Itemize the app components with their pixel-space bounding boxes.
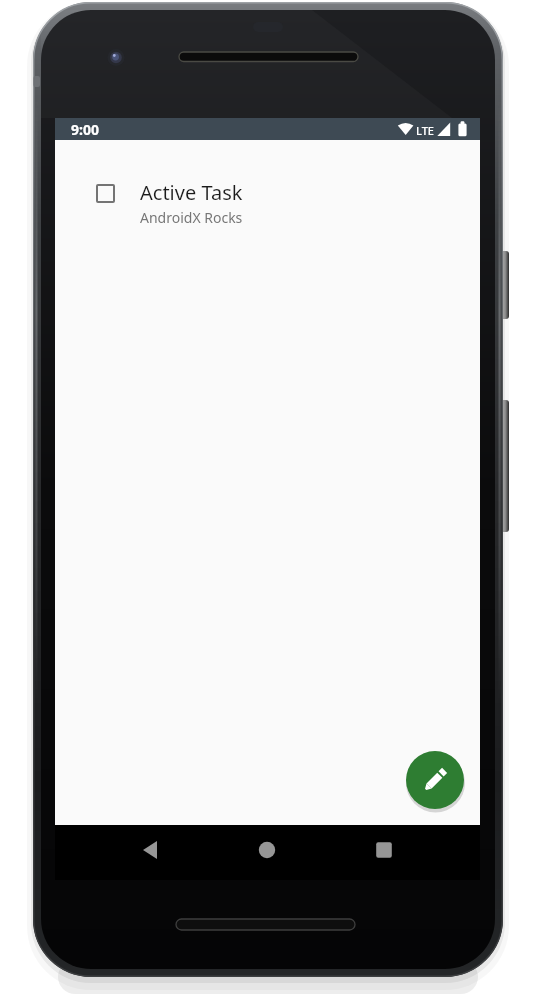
staticText: 9:00 <box>71 120 99 139</box>
staticText: Active Task <box>140 179 243 206</box>
button[interactable] <box>406 751 464 809</box>
button[interactable] <box>243 826 291 874</box>
staticText: AndroidX Rocks <box>140 208 243 227</box>
button[interactable]: Active Task <box>55 170 480 234</box>
button[interactable] <box>360 826 408 874</box>
button[interactable] <box>126 826 174 874</box>
staticText: LTE <box>416 123 434 138</box>
button[interactable] <box>96 184 115 203</box>
